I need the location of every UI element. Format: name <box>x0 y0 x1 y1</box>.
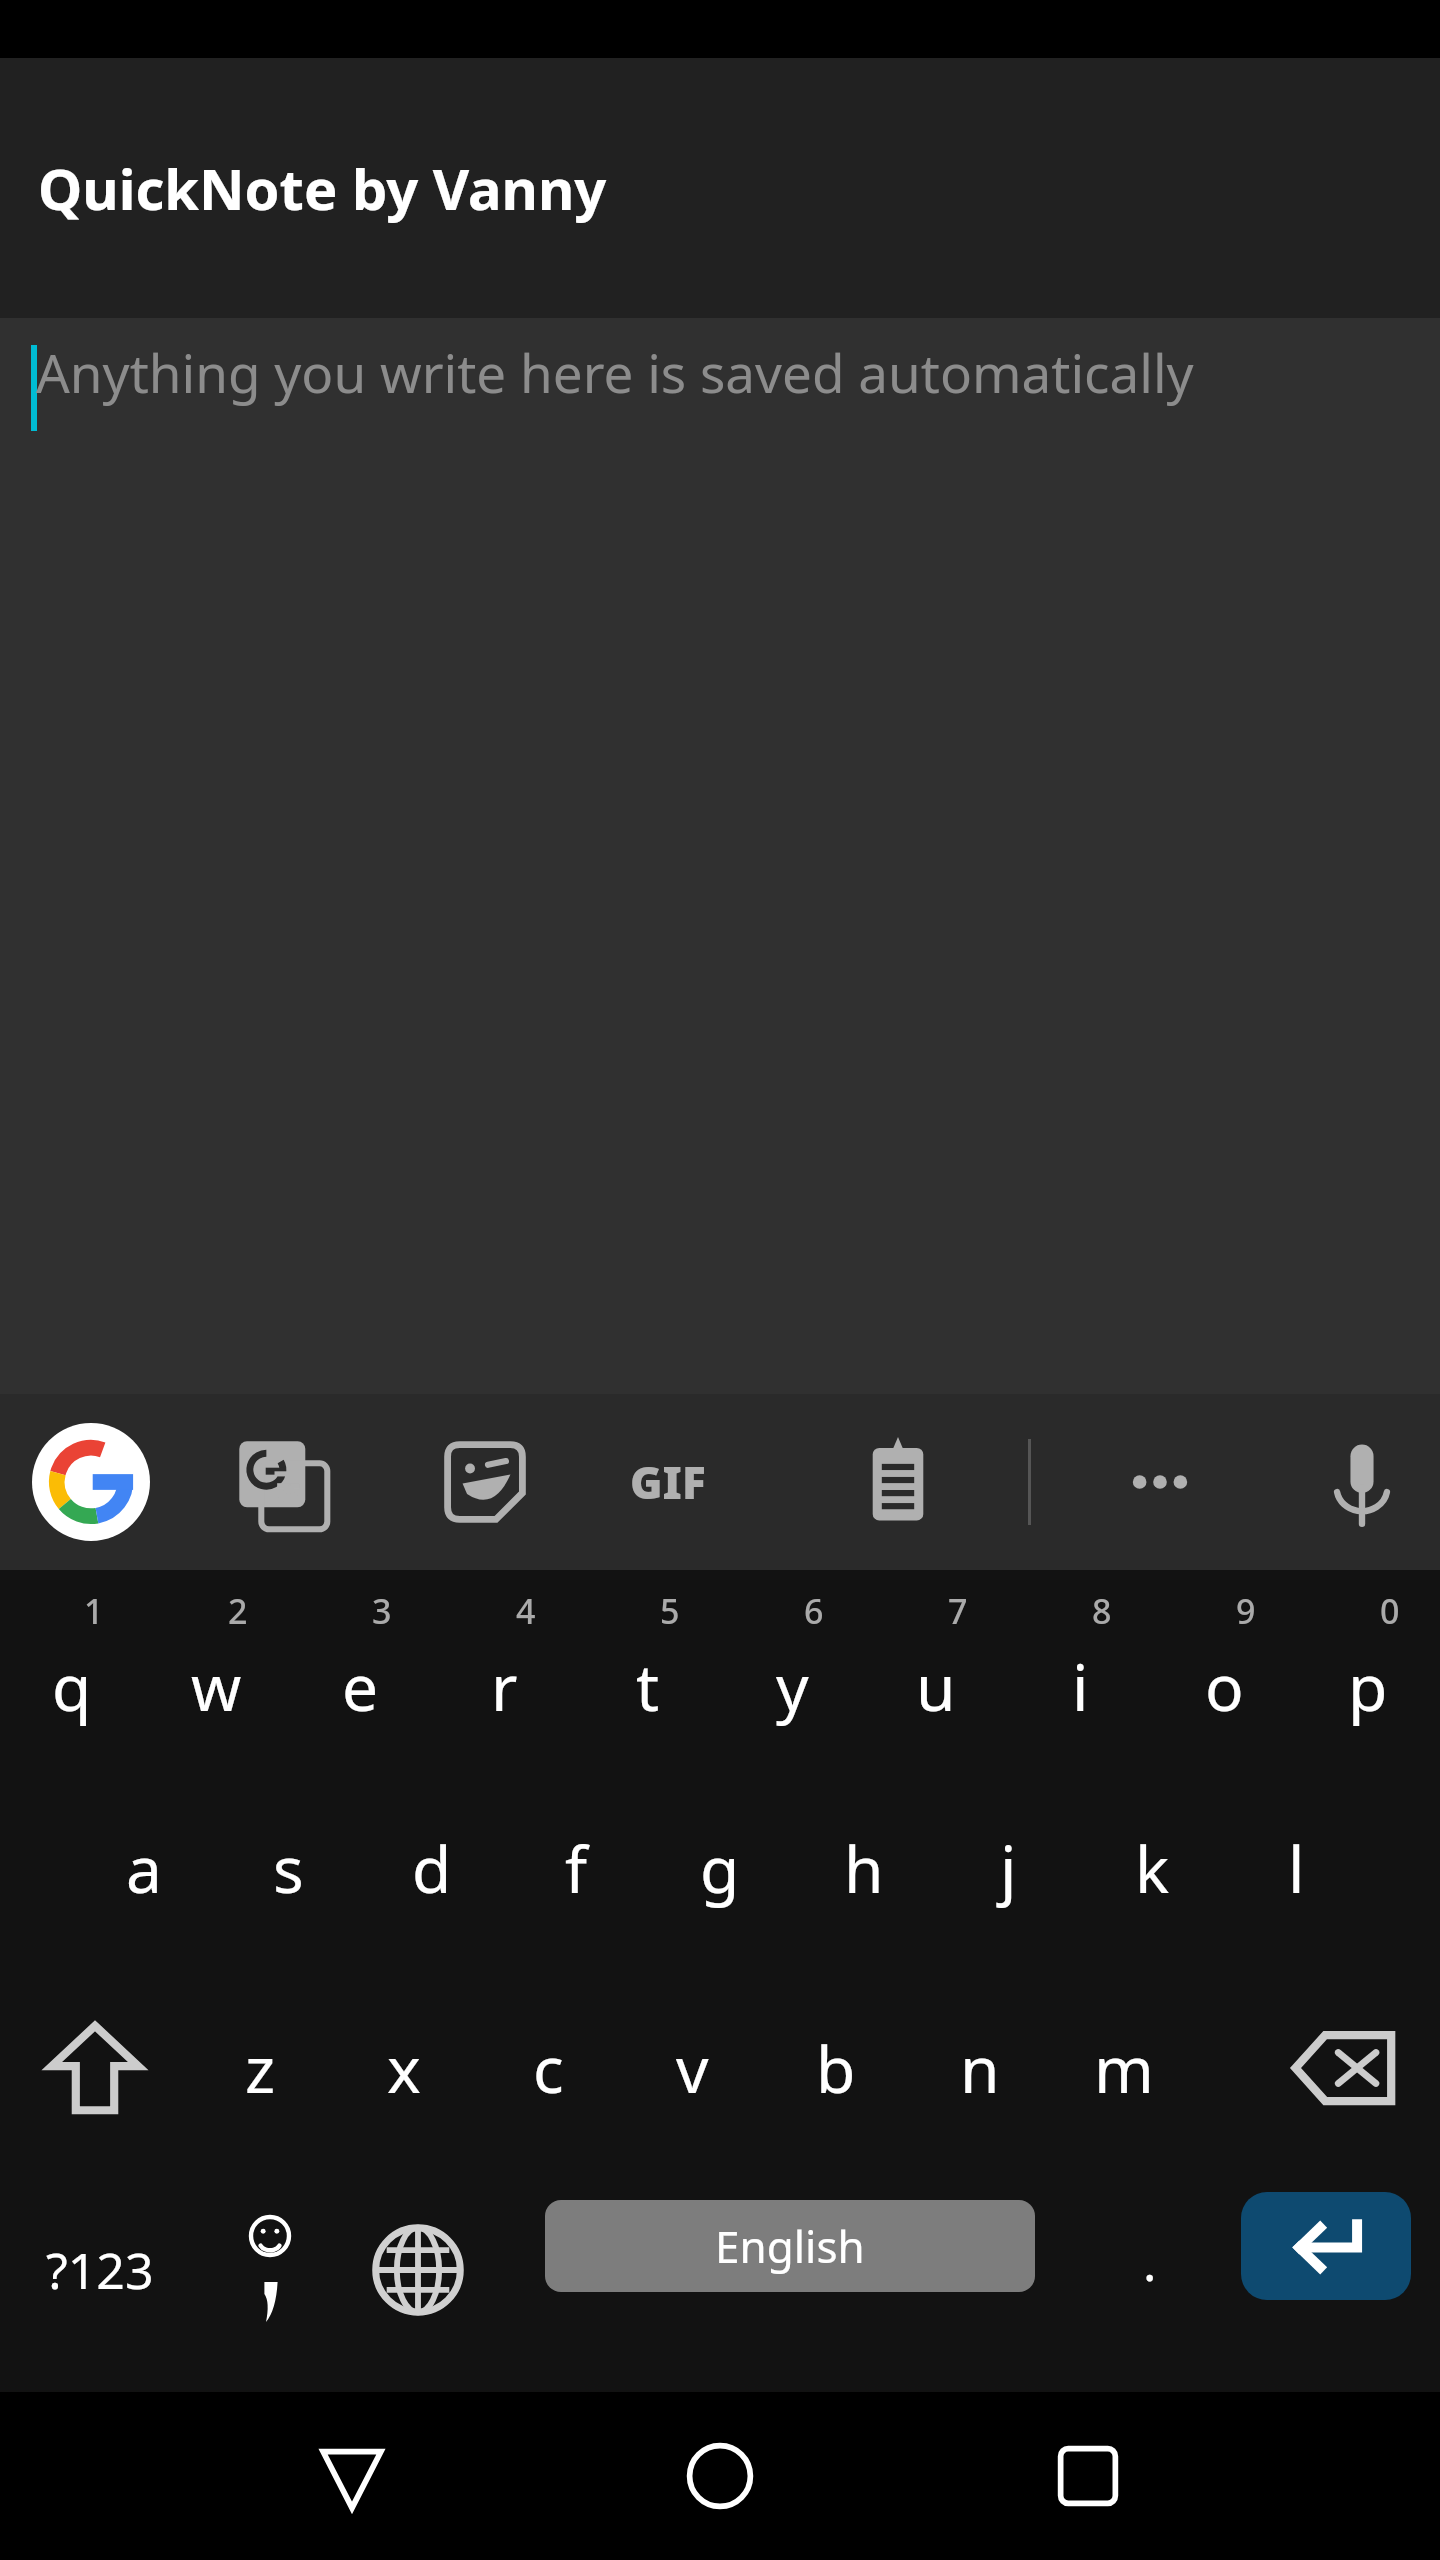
staticText: 3 <box>372 1588 392 1634</box>
button[interactable]: 2 <box>144 1570 288 1766</box>
button[interactable]: 4 <box>432 1570 576 1766</box>
staticText: i <box>1072 1643 1089 1730</box>
staticText: x <box>387 2025 421 2112</box>
button[interactable]: ?123 <box>0 2170 200 2370</box>
staticText: 7 <box>948 1588 968 1634</box>
button[interactable]: More options <box>1105 1427 1215 1537</box>
staticText: 5 <box>660 1588 680 1634</box>
staticText: d <box>412 1825 452 1912</box>
staticText: 6 <box>804 1588 824 1634</box>
button[interactable]: Anything you write here is saved automat… <box>0 318 1440 1394</box>
button[interactable]: Google search <box>32 1423 150 1541</box>
staticText: z <box>245 2025 276 2112</box>
button[interactable]: Back <box>282 2406 422 2546</box>
button[interactable]: 5 <box>576 1570 720 1766</box>
button[interactable]: Home <box>650 2406 790 2546</box>
button[interactable]: Clipboard <box>843 1427 953 1537</box>
staticText: 1 <box>84 1588 104 1634</box>
staticText: 9 <box>1236 1588 1256 1634</box>
button[interactable]: f <box>504 1770 648 1966</box>
button[interactable]: h <box>792 1770 936 1966</box>
staticText: t <box>636 1643 660 1730</box>
staticText: g <box>700 1825 740 1912</box>
button[interactable]: k <box>1080 1770 1224 1966</box>
staticText: w <box>191 1643 242 1730</box>
staticText: GIF <box>630 1452 706 1512</box>
button[interactable]: b <box>764 1970 908 2166</box>
button[interactable]: . <box>1080 2170 1220 2370</box>
button[interactable]: 8 <box>1008 1570 1152 1766</box>
staticText: h <box>844 1825 884 1912</box>
button[interactable]: Shift <box>0 1970 190 2166</box>
button[interactable]: n <box>908 1970 1052 2166</box>
button[interactable]: j <box>936 1770 1080 1966</box>
staticText: . <box>1143 2228 1157 2296</box>
staticText: 4 <box>516 1588 536 1634</box>
button[interactable]: Recent apps <box>1018 2406 1158 2546</box>
staticText: f <box>565 1825 588 1912</box>
staticText: n <box>960 2025 1000 2112</box>
staticText: b <box>816 2025 856 2112</box>
button[interactable]: English <box>545 2200 1035 2292</box>
staticText: ?123 <box>46 2236 154 2304</box>
staticText: 2 <box>228 1588 248 1634</box>
button[interactable]: Backspace <box>1250 1970 1440 2166</box>
staticText: English <box>715 2216 865 2276</box>
staticText: o <box>1205 1643 1244 1730</box>
button[interactable]: Change language <box>335 2170 500 2370</box>
staticText: c <box>533 2025 564 2112</box>
button[interactable]: Voice input <box>1307 1427 1417 1537</box>
staticText: y <box>776 1643 809 1730</box>
button[interactable]: 0 <box>1296 1570 1440 1766</box>
button[interactable]: 7 <box>864 1570 1008 1766</box>
button[interactable]: d <box>360 1770 504 1966</box>
button[interactable]: Comma, emoji <box>205 2170 335 2370</box>
button[interactable]: v <box>620 1970 764 2166</box>
staticText: Anything you write here is saved automat… <box>36 336 1194 408</box>
staticText: l <box>1288 1825 1305 1912</box>
button[interactable]: 6 <box>720 1570 864 1766</box>
button[interactable]: s <box>216 1770 360 1966</box>
button[interactable]: g <box>648 1770 792 1966</box>
staticText: p <box>1348 1643 1388 1730</box>
button[interactable]: c <box>476 1970 620 2166</box>
staticText: m <box>1094 2025 1154 2112</box>
button[interactable]: a <box>72 1770 216 1966</box>
button[interactable]: 1 <box>0 1570 144 1766</box>
button[interactable]: 3 <box>288 1570 432 1766</box>
staticText: u <box>916 1643 956 1730</box>
staticText: j <box>1000 1825 1017 1912</box>
button[interactable]: 9 <box>1152 1570 1296 1766</box>
staticText: s <box>273 1825 304 1912</box>
button[interactable]: m <box>1052 1970 1196 2166</box>
staticText: a <box>126 1825 162 1912</box>
staticText: k <box>1135 1825 1170 1912</box>
button[interactable]: Stickers <box>430 1427 540 1537</box>
staticText: 0 <box>1380 1588 1400 1634</box>
staticText: v <box>676 2025 709 2112</box>
button[interactable]: x <box>332 1970 476 2166</box>
staticText: e <box>342 1643 379 1730</box>
button[interactable]: GIF <box>613 1427 723 1537</box>
button[interactable]: Translate <box>225 1427 335 1537</box>
staticText: 8 <box>1092 1588 1112 1634</box>
staticText: QuickNote by Vanny <box>38 150 607 226</box>
button[interactable]: l <box>1224 1770 1368 1966</box>
button[interactable]: Enter <box>1241 2192 1411 2300</box>
button[interactable]: z <box>188 1970 332 2166</box>
staticText: q <box>52 1643 92 1730</box>
staticText: r <box>491 1643 518 1730</box>
